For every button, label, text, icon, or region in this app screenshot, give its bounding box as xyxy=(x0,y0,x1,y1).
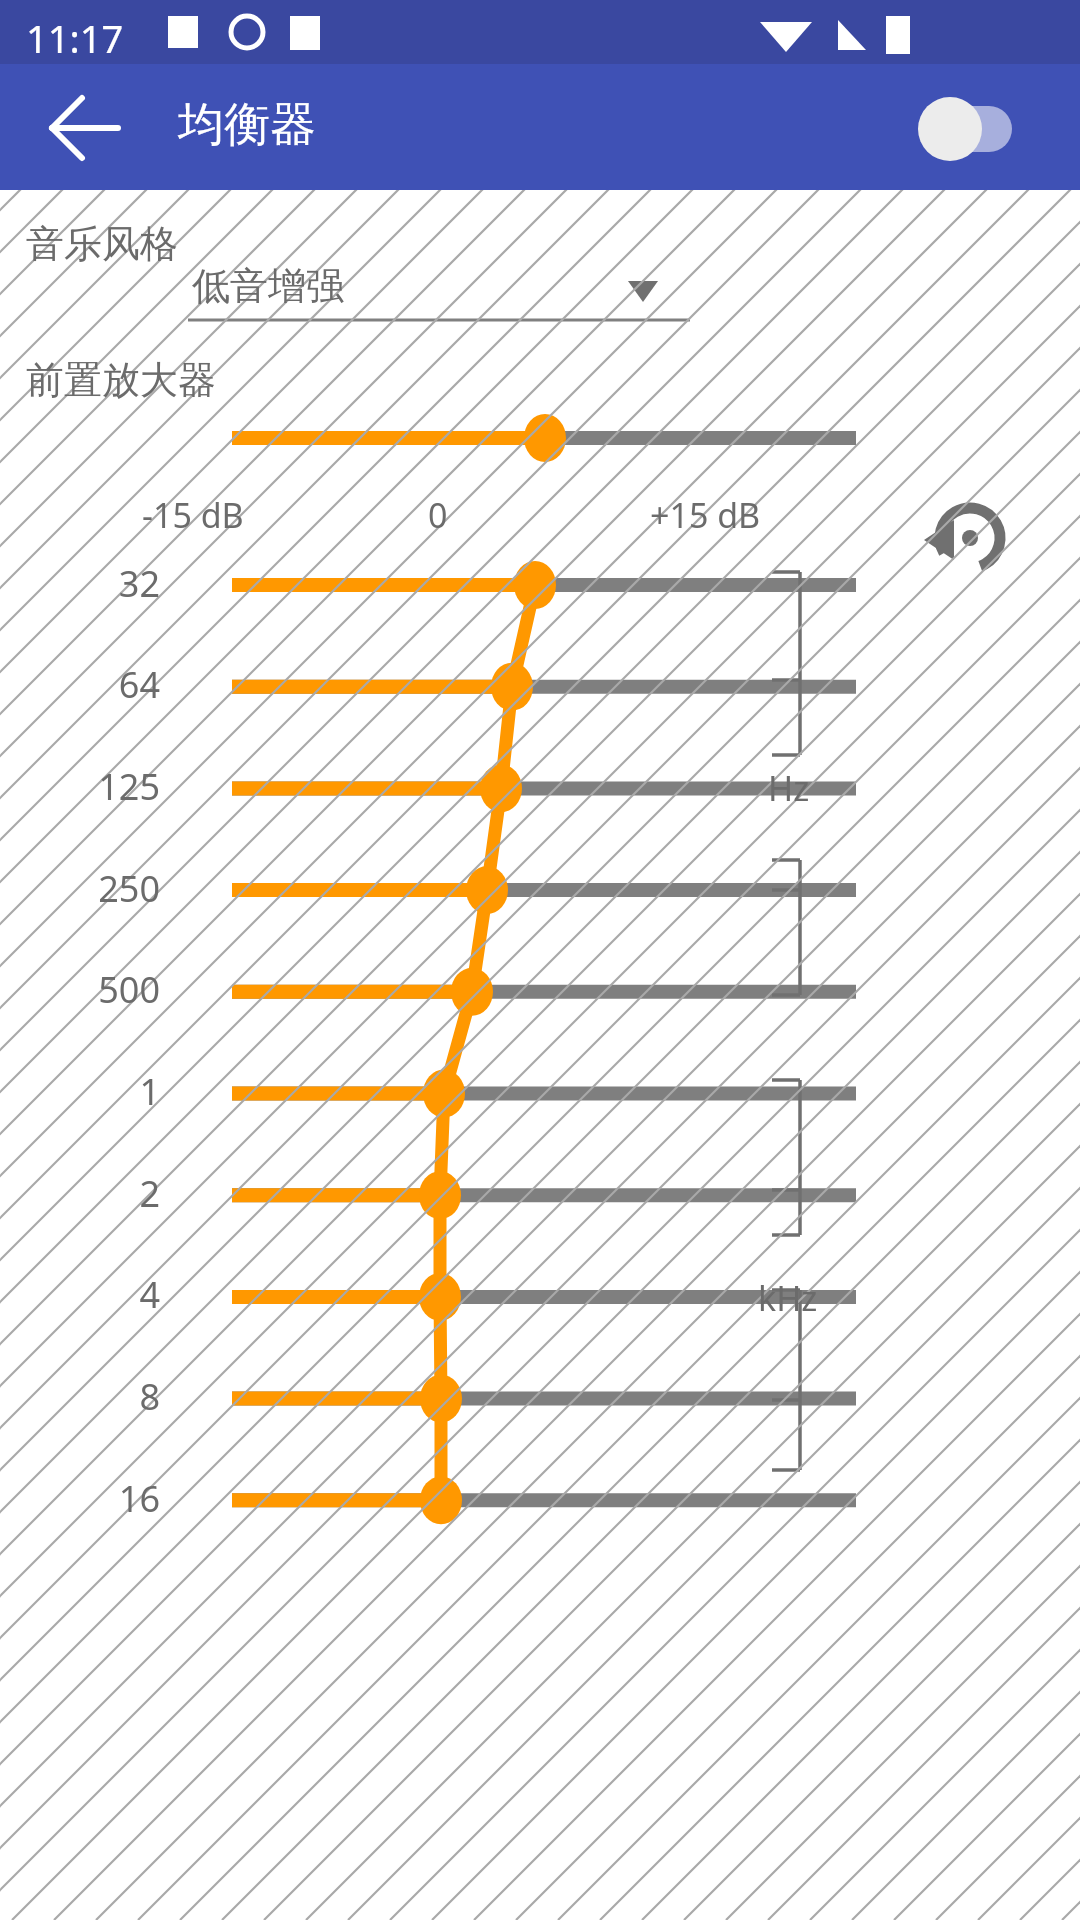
button[interactable]: 8 xyxy=(30,1372,160,1424)
staticText: 64 xyxy=(30,660,160,712)
button[interactable]: Enable equalizer xyxy=(918,96,1022,162)
staticText: 500 xyxy=(30,965,160,1017)
button[interactable]: 64 xyxy=(30,660,160,712)
button[interactable]: 低音增强 xyxy=(188,256,690,322)
button[interactable]: 1 xyxy=(30,1067,160,1119)
button[interactable]: 250 xyxy=(30,864,160,916)
button[interactable]: 2 xyxy=(30,1169,160,1221)
staticText: 1 xyxy=(30,1067,160,1119)
staticText: 0 xyxy=(428,492,448,538)
button[interactable]: 500 xyxy=(30,965,160,1017)
staticText: kHz xyxy=(758,1275,818,1321)
staticText: 2 xyxy=(30,1169,160,1221)
staticText: 前置放大器 xyxy=(26,356,216,404)
button[interactable]: 32 xyxy=(30,559,160,611)
staticText: 音乐风格 xyxy=(26,220,178,268)
button[interactable]: 16 xyxy=(30,1474,160,1526)
staticText: 250 xyxy=(30,864,160,916)
staticText: 32 xyxy=(30,559,160,611)
staticText: Hz xyxy=(768,765,810,811)
button[interactable]: Back xyxy=(40,94,134,164)
staticText: 均衡器 xyxy=(178,96,316,154)
staticText: 8 xyxy=(30,1372,160,1424)
staticText: 16 xyxy=(30,1474,160,1526)
staticText: -15 dB xyxy=(142,492,244,538)
staticText: 低音增强 xyxy=(192,262,344,310)
staticText: 11:17 xyxy=(26,12,124,64)
staticText: 4 xyxy=(30,1270,160,1322)
button[interactable]: Reset preamp xyxy=(928,496,1014,580)
staticText: 125 xyxy=(30,762,160,814)
staticText: +15 dB xyxy=(650,492,761,538)
button[interactable]: 125 xyxy=(30,762,160,814)
button[interactable]: 4 xyxy=(30,1270,160,1322)
